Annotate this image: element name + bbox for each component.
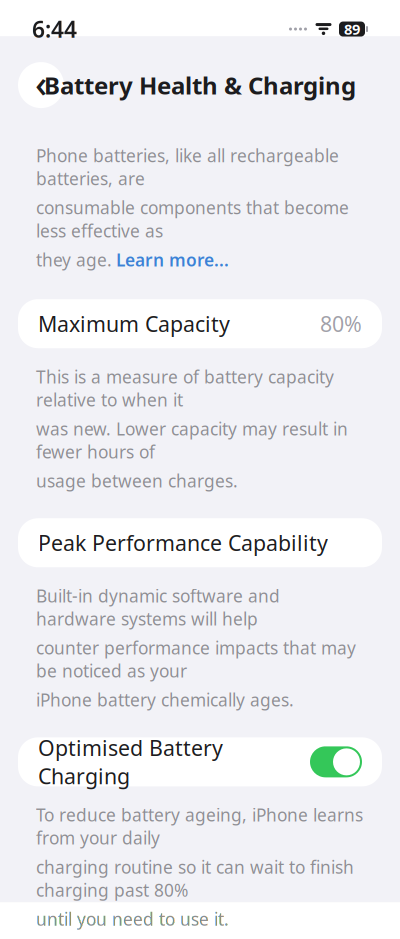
- staticText: was new. Lower capacity may result in fe…: [36, 417, 348, 463]
- staticText: To reduce battery ageing, iPhone learns …: [36, 803, 363, 849]
- staticText: Learn more...: [116, 248, 229, 271]
- staticText: 89: [344, 19, 360, 39]
- staticText: ‹: [35, 58, 47, 108]
- button[interactable]: Learn more...: [116, 248, 229, 271]
- button[interactable]: Optimised Battery Charging: [18, 737, 382, 786]
- staticText: iPhone battery chemically ages.: [36, 688, 294, 711]
- staticText: Maximum Capacity: [38, 309, 230, 338]
- staticText: usage between charges.: [36, 469, 238, 492]
- staticText: Phone batteries, like all rechargeable b…: [36, 144, 339, 190]
- button[interactable]: Maximum Capacity: [18, 299, 382, 348]
- staticText: This is a measure of battery capacity re…: [36, 365, 334, 411]
- button[interactable]: Back: [18, 58, 64, 112]
- button[interactable]: Peak Performance Capability: [18, 518, 382, 567]
- staticText: consumable components that become less e…: [36, 196, 349, 242]
- staticText: 6:44: [32, 14, 77, 44]
- staticText: charging routine so it can wait to finis…: [36, 855, 354, 901]
- staticText: Built-in dynamic software and hardware s…: [36, 584, 280, 630]
- staticText: until you need to use it.: [36, 907, 229, 930]
- staticText: Optimised Battery Charging: [38, 733, 223, 790]
- staticText: Peak Performance Capability: [38, 529, 328, 557]
- staticText: Battery Health & Charging: [44, 69, 356, 101]
- staticText: they age.: [36, 248, 112, 271]
- staticText: 80%: [320, 309, 362, 338]
- staticText: counter performance impacts that may be …: [36, 636, 356, 682]
